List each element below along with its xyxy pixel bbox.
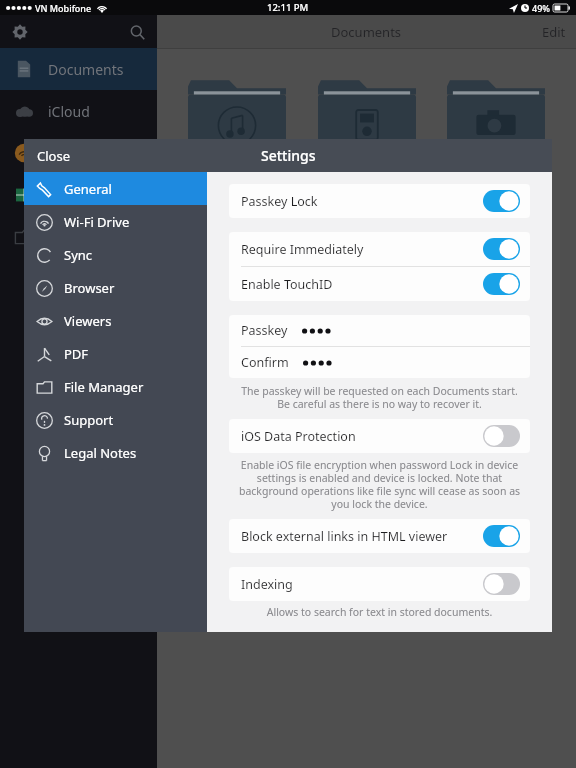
- staticText: Confirm: [241, 354, 289, 371]
- button[interactable]: Enable TouchID: [229, 267, 530, 301]
- staticText: Settings: [261, 146, 316, 165]
- button[interactable]: File Manager: [24, 370, 207, 403]
- button[interactable]: Confirm: [229, 347, 530, 378]
- button[interactable]: iOS Data Protection: [229, 419, 530, 453]
- staticText: Passkey: [241, 322, 288, 339]
- staticText: Browser: [64, 279, 115, 297]
- staticText: Enable iOS file encryption when password…: [235, 458, 524, 511]
- staticText: iCloud: [48, 102, 90, 121]
- staticText: Passkey Lock: [241, 193, 318, 210]
- button[interactable]: PDF: [24, 337, 207, 370]
- button[interactable]: Require Immediately: [229, 232, 530, 266]
- button[interactable]: Wi-Fi Drive: [24, 205, 207, 238]
- button[interactable]: Search: [125, 20, 149, 44]
- button[interactable]: Support: [24, 403, 207, 436]
- staticText: iOS Data Protection: [241, 428, 356, 445]
- staticText: Legal Notes: [64, 444, 137, 462]
- button[interactable]: iCloud: [0, 90, 157, 132]
- staticText: Block external links in HTML viewer: [241, 528, 448, 545]
- button[interactable]: Edit: [542, 23, 566, 41]
- button[interactable]: [188, 71, 286, 149]
- button[interactable]: Documents: [0, 48, 157, 90]
- staticText: Allows to search for text in stored docu…: [235, 605, 524, 619]
- button[interactable]: Close: [37, 147, 70, 165]
- staticText: Documents: [48, 60, 124, 79]
- staticText: Support: [64, 411, 114, 429]
- button[interactable]: Network: [0, 132, 157, 174]
- staticText: General: [64, 180, 112, 198]
- button[interactable]: Browser: [24, 271, 207, 304]
- staticText: Folder: [48, 228, 90, 247]
- staticText: Edit: [542, 23, 566, 41]
- staticText: The passkey will be requested on each Do…: [235, 384, 524, 411]
- staticText: Enable TouchID: [241, 276, 333, 293]
- button[interactable]: Block external links in HTML viewer: [229, 519, 530, 553]
- button[interactable]: Settings: [8, 20, 32, 44]
- button[interactable]: Passkey: [229, 315, 530, 346]
- button[interactable]: Folder: [0, 216, 157, 258]
- staticText: Viewers: [64, 312, 112, 330]
- staticText: PDF: [64, 345, 89, 363]
- button[interactable]: Viewers: [24, 304, 207, 337]
- button[interactable]: Legal Notes: [24, 436, 207, 469]
- staticText: Dropbox: [48, 186, 106, 205]
- staticText: Documents: [331, 23, 402, 41]
- staticText: Network: [48, 144, 105, 163]
- button[interactable]: Indexing: [229, 567, 530, 601]
- button[interactable]: [447, 71, 545, 149]
- staticText: File Manager: [64, 378, 144, 396]
- button[interactable]: Sync: [24, 238, 207, 271]
- staticText: 12:11 PM: [267, 1, 309, 14]
- staticText: Close: [37, 147, 70, 165]
- staticText: Wi-Fi Drive: [64, 213, 130, 231]
- staticText: Sync: [64, 246, 93, 264]
- button[interactable]: [318, 71, 416, 149]
- staticText: Require Immediately: [241, 241, 364, 258]
- button[interactable]: General: [24, 172, 207, 205]
- button[interactable]: Dropbox: [0, 174, 157, 216]
- button[interactable]: Passkey Lock: [229, 184, 530, 218]
- staticText: 49%: [532, 2, 550, 14]
- staticText: VN Mobifone: [35, 2, 92, 14]
- staticText: Indexing: [241, 576, 293, 593]
